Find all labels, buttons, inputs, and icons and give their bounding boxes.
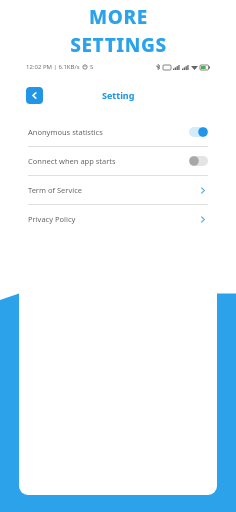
staticText: 12:02 PM | 6.1KB/s	[26, 63, 80, 71]
button[interactable]: Term of Service	[19, 176, 217, 204]
button[interactable]: Connect when app starts toggle, off	[189, 156, 208, 166]
staticText: Connect when app starts	[28, 156, 116, 166]
button[interactable]: Connect when app starts	[19, 147, 217, 175]
button[interactable]: Privacy Policy	[19, 205, 217, 233]
staticText: Privacy Policy	[28, 214, 76, 224]
button[interactable]: Anonymous statistics	[19, 118, 217, 146]
staticText: Anonymous statistics	[28, 127, 103, 137]
staticText: S	[90, 63, 94, 71]
button[interactable]: Back	[26, 87, 43, 104]
button[interactable]: Anonymous statistics toggle, on	[189, 127, 208, 137]
staticText: Setting	[102, 89, 135, 101]
staticText: SETTINGS	[70, 32, 167, 58]
staticText: Term of Service	[28, 185, 83, 195]
staticText: MORE	[89, 4, 148, 30]
other: Open	[198, 184, 208, 196]
other: Open	[198, 213, 208, 225]
